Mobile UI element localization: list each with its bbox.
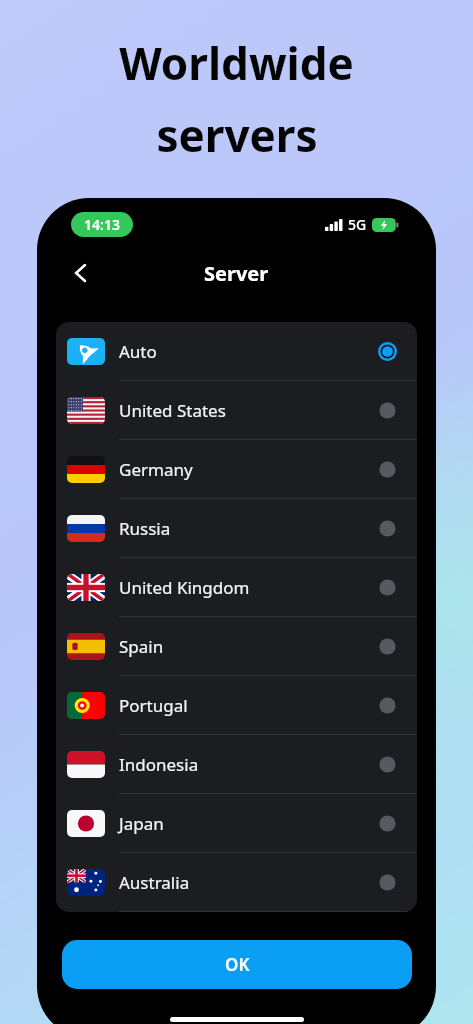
button[interactable]: Japan xyxy=(56,794,417,853)
button[interactable]: OK xyxy=(62,940,412,989)
staticText: Russia xyxy=(119,517,171,540)
staticText: Japan xyxy=(119,812,164,835)
staticText: Indonesia xyxy=(119,753,199,776)
staticText: Server xyxy=(204,260,269,287)
staticText: United Kingdom xyxy=(119,576,250,599)
staticText: Auto xyxy=(119,340,157,363)
staticText: Worldwide xyxy=(119,33,354,93)
staticText: Spain xyxy=(119,635,164,658)
button[interactable]: United States xyxy=(56,381,417,440)
button[interactable]: United Kingdom xyxy=(56,558,417,617)
staticText: Portugal xyxy=(119,694,188,717)
button[interactable]: Germany xyxy=(56,440,417,499)
staticText: 14:13 xyxy=(84,215,120,234)
button[interactable]: Russia xyxy=(56,499,417,558)
button[interactable]: Australia xyxy=(56,853,417,912)
button[interactable]: Auto xyxy=(56,322,417,381)
staticText: 5G xyxy=(348,215,367,234)
button[interactable]: Spain xyxy=(56,617,417,676)
staticText: OK xyxy=(225,953,250,976)
button[interactable]: Back xyxy=(59,251,103,295)
button[interactable]: Portugal xyxy=(56,676,417,735)
staticText: Germany xyxy=(119,458,193,481)
staticText: Australia xyxy=(119,871,190,894)
staticText: servers xyxy=(156,105,318,165)
button[interactable]: Indonesia xyxy=(56,735,417,794)
staticText: United States xyxy=(119,399,226,422)
